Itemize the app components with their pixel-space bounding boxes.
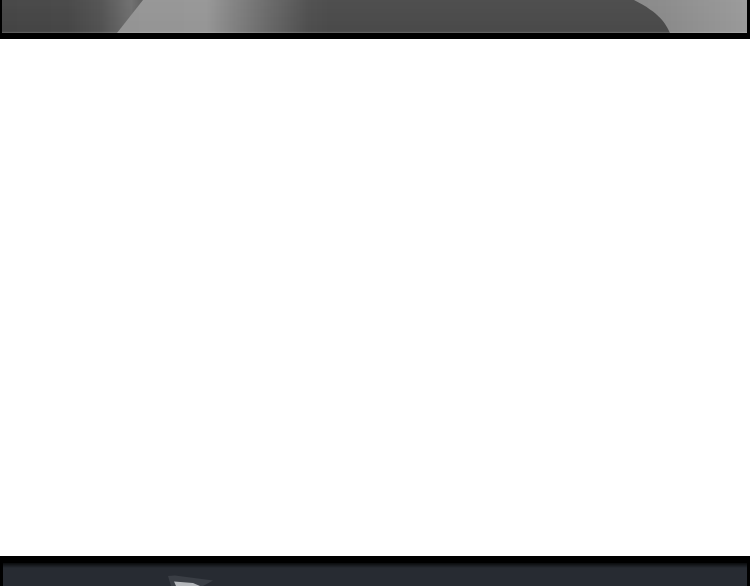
button[interactable]: Bottom bar [0,556,750,586]
button[interactable]: Hero photo [0,0,750,39]
